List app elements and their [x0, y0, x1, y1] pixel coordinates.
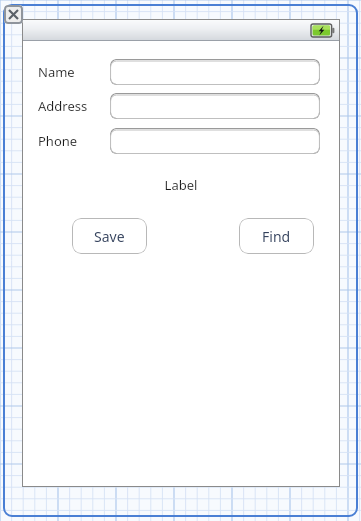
staticText: Phone [38, 132, 78, 150]
button[interactable]: Save [72, 218, 147, 254]
button[interactable]: Address input field [110, 93, 320, 119]
other: Battery charging [311, 24, 335, 37]
staticText: Label [22, 176, 340, 194]
button[interactable]: Close [4, 5, 23, 24]
button[interactable]: Name input field [110, 59, 320, 85]
staticText: Find [262, 227, 291, 246]
button[interactable]: Phone input field [110, 128, 320, 154]
staticText: Save [94, 227, 125, 246]
button[interactable]: Find [239, 218, 314, 254]
staticText: Name [38, 63, 75, 81]
staticText: Address [38, 97, 88, 115]
